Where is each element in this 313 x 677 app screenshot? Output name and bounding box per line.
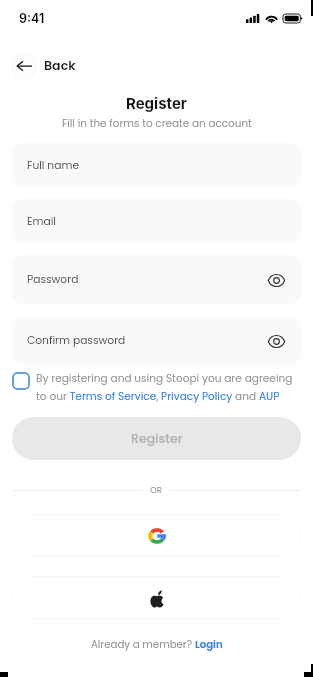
- button[interactable]: Login: [195, 637, 223, 651]
- button[interactable]: Password: [12, 255, 301, 304]
- staticText: OR: [150, 484, 162, 496]
- staticText: Fill in the forms to create an account: [62, 116, 252, 131]
- button[interactable]: Sign up with Google: [12, 514, 301, 557]
- button[interactable]: Show password: [263, 267, 289, 293]
- button[interactable]: Confirm password: [12, 316, 301, 365]
- staticText: Register: [126, 94, 187, 112]
- button[interactable]: Accept terms and conditions: [12, 372, 30, 390]
- staticText: Register: [131, 430, 183, 448]
- staticText: By registering and using Stoopi you are …: [36, 371, 294, 404]
- button[interactable]: Sign up with Apple: [12, 576, 301, 619]
- button[interactable]: Register: [12, 417, 301, 460]
- button[interactable]: Full name: [12, 143, 301, 188]
- staticText: Full name: [27, 158, 80, 173]
- button[interactable]: Back: [11, 53, 82, 79]
- staticText: Email: [27, 214, 56, 229]
- staticText: Confirm password: [27, 333, 126, 348]
- staticText: Back: [44, 57, 76, 75]
- staticText: Password: [27, 272, 79, 287]
- staticText: Already a member?: [91, 637, 195, 651]
- button[interactable]: Email: [12, 199, 301, 244]
- staticText: 9:41: [19, 11, 45, 26]
- button[interactable]: Show password: [263, 328, 289, 354]
